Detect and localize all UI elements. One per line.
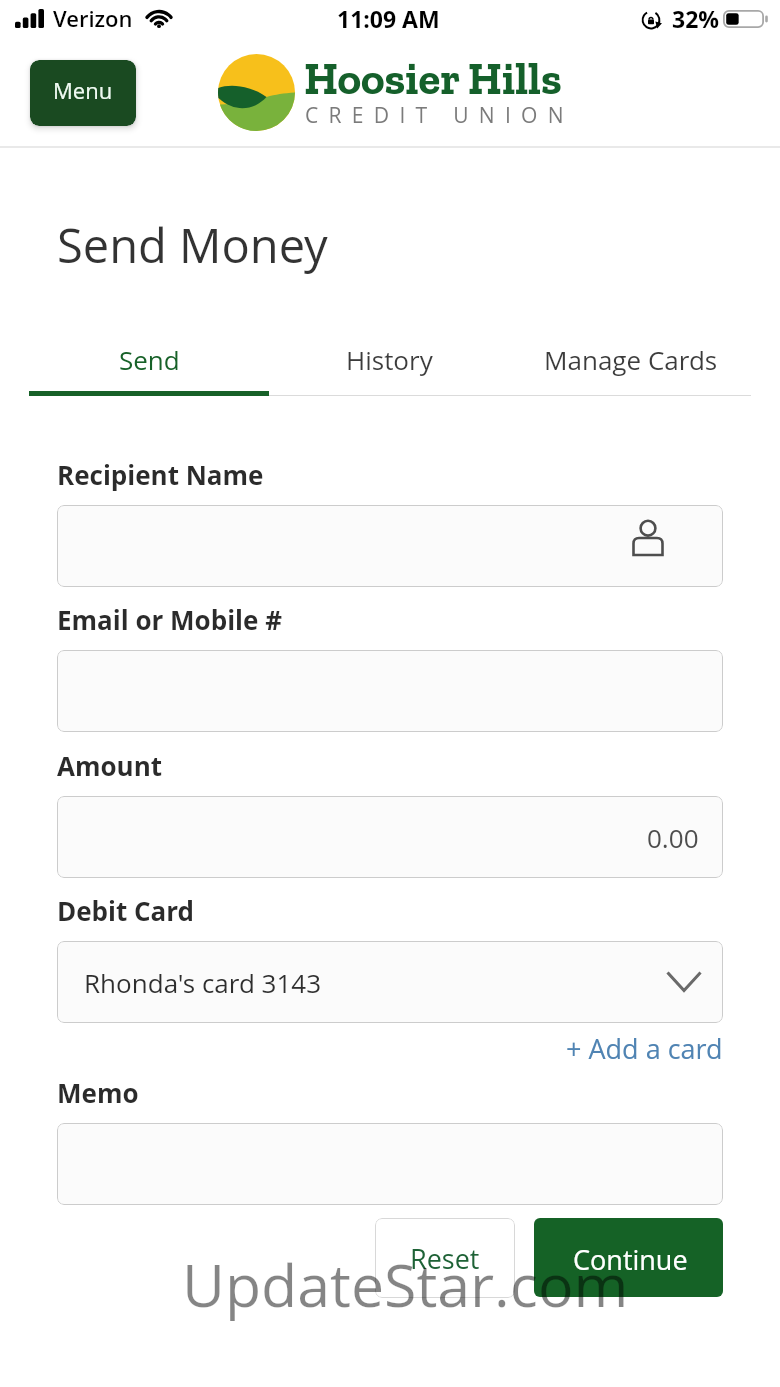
button[interactable]: Menu	[30, 60, 136, 126]
staticText: Debit Card	[57, 893, 195, 928]
button[interactable]: + Add a card	[566, 1030, 723, 1067]
staticText: Send Money	[57, 213, 328, 277]
staticText: Rhonda's card 3143	[84, 965, 322, 1000]
staticText: 32%	[672, 3, 719, 34]
button[interactable]: Send	[29, 342, 269, 396]
staticText: Reset	[410, 1240, 480, 1277]
staticText: Email or Mobile #	[57, 602, 282, 637]
button[interactable]: History	[269, 342, 510, 396]
button[interactable]: 0.00	[57, 796, 723, 878]
staticText: + Add a card	[566, 1030, 723, 1067]
other: Select card	[667, 972, 701, 992]
staticText: Continue	[573, 1241, 688, 1278]
button[interactable]	[534, 1218, 723, 1297]
button[interactable]: Reset	[375, 1218, 515, 1298]
button[interactable]: Manage Cards	[510, 342, 751, 396]
staticText: Menu	[53, 75, 113, 105]
staticText: Hoosier Hills	[304, 52, 562, 106]
staticText: Manage Cards	[544, 342, 718, 377]
staticText: 11:09 AM	[337, 3, 440, 34]
staticText: 0.00	[647, 820, 699, 855]
other: Choose contact	[633, 520, 663, 556]
button[interactable]	[57, 1123, 723, 1205]
staticText: Recipient Name	[57, 457, 264, 492]
staticText: History	[346, 342, 433, 377]
staticText: UpdateStar.com	[182, 1244, 629, 1324]
staticText: CREDIT UNION	[305, 101, 574, 130]
button[interactable]	[57, 650, 723, 732]
button[interactable]: Rhonda's card 3143	[57, 941, 723, 1023]
staticText: Memo	[57, 1075, 139, 1110]
staticText: Amount	[57, 748, 163, 783]
button[interactable]: Choose contact	[57, 505, 723, 587]
staticText: Send	[119, 342, 180, 377]
staticText: Verizon	[53, 3, 133, 33]
